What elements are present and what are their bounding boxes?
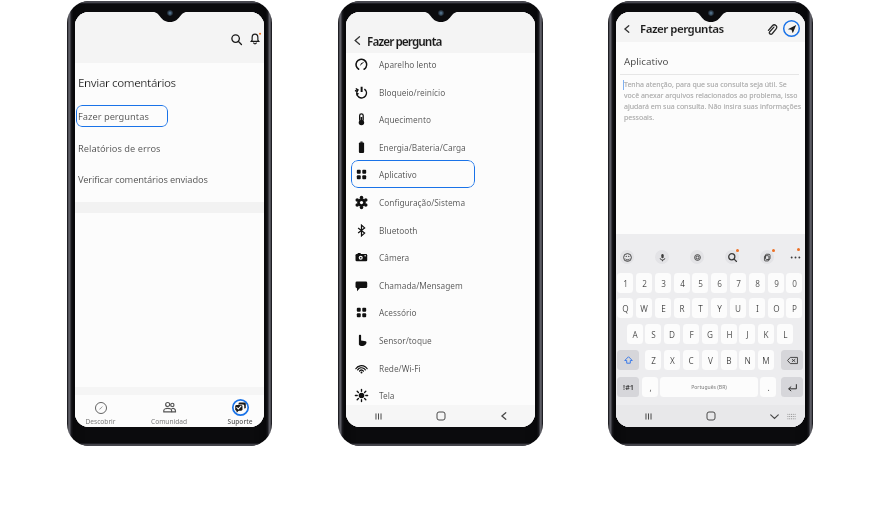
button[interactable]: Notifications: [246, 30, 264, 48]
staticText: E: [661, 303, 666, 314]
button[interactable]: Acessório: [351, 298, 475, 326]
button[interactable]: Descobrir: [85, 396, 116, 427]
button[interactable]: Bluetooth: [351, 216, 475, 244]
button[interactable]: Backspace: [781, 350, 803, 370]
button[interactable]: 2: [636, 273, 652, 293]
button[interactable]: Sensor/toque: [351, 326, 475, 354]
staticText: Tenha atenção, para que sua consulta sej…: [624, 80, 801, 122]
button[interactable]: Stickers: [690, 250, 704, 264]
button[interactable]: Y: [711, 298, 727, 318]
button[interactable]: P: [786, 298, 802, 318]
button[interactable]: Home: [703, 408, 719, 424]
staticText: 9: [774, 278, 779, 289]
staticText: ,: [649, 382, 652, 393]
staticText: 0: [792, 278, 797, 289]
button[interactable]: Português (BR): [660, 377, 758, 397]
button[interactable]: W: [636, 298, 652, 318]
staticText: Enviar comentários: [78, 75, 176, 91]
staticText: Aquecimento: [379, 114, 431, 125]
button[interactable]: R: [674, 298, 690, 318]
button[interactable]: Tela: [351, 381, 475, 409]
button[interactable]: X: [664, 350, 680, 370]
button[interactable]: 9: [768, 273, 784, 293]
button[interactable]: Relatórios de erros: [75, 137, 264, 159]
button[interactable]: 8: [749, 273, 765, 293]
button[interactable]: Hide keyboard: [766, 408, 782, 424]
button[interactable]: Z: [645, 350, 661, 370]
staticText: 1: [623, 278, 628, 289]
button[interactable]: Recent apps: [370, 408, 386, 424]
button[interactable]: Attach file: [763, 21, 779, 37]
staticText: Tela: [379, 390, 395, 401]
staticText: N: [744, 355, 751, 366]
button[interactable]: C: [683, 350, 699, 370]
button[interactable]: ,: [642, 377, 658, 397]
button[interactable]: N: [739, 350, 755, 370]
button[interactable]: Verificar comentários enviados: [75, 168, 264, 190]
button[interactable]: Clipboard: [760, 250, 774, 264]
button[interactable]: 1: [617, 273, 633, 293]
button[interactable]: M: [758, 350, 774, 370]
button[interactable]: L: [777, 324, 793, 344]
button[interactable]: Search: [227, 30, 245, 48]
button[interactable]: Rede/Wi-Fi: [351, 354, 475, 382]
staticText: Aplicativo: [379, 169, 417, 180]
button[interactable]: 4: [674, 273, 690, 293]
button[interactable]: E: [655, 298, 671, 318]
button[interactable]: G: [702, 324, 718, 344]
button[interactable]: Change keyboard: [784, 409, 798, 423]
button[interactable]: Emoji: [620, 250, 634, 264]
button[interactable]: A: [627, 324, 643, 344]
button[interactable]: Aquecimento: [351, 105, 475, 133]
button[interactable]: Q: [617, 298, 633, 318]
button[interactable]: I: [749, 298, 765, 318]
staticText: 8: [755, 278, 760, 289]
button[interactable]: Bloqueio/reinício: [351, 78, 475, 106]
button[interactable]: Back: [496, 408, 512, 424]
staticText: Rede/Wi-Fi: [379, 363, 421, 374]
button[interactable]: Send: [783, 20, 800, 37]
button[interactable]: 5: [692, 273, 708, 293]
button[interactable]: Energia/Bateria/Carga: [351, 133, 475, 161]
button[interactable]: Suporte: [226, 396, 254, 427]
button[interactable]: Voice input: [655, 250, 669, 264]
staticText: Comunidade: [150, 417, 188, 427]
button[interactable]: Search: [725, 250, 739, 264]
button[interactable]: Chamada/Mensagem: [351, 271, 475, 299]
button[interactable]: !#1: [617, 377, 639, 397]
staticText: R: [679, 303, 685, 314]
staticText: V: [708, 355, 713, 366]
button[interactable]: Back: [619, 21, 635, 37]
button[interactable]: J: [739, 324, 755, 344]
button[interactable]: V: [702, 350, 718, 370]
button[interactable]: Enter: [781, 377, 803, 397]
button[interactable]: F: [683, 324, 699, 344]
button[interactable]: Recent apps: [640, 408, 656, 424]
button[interactable]: Shift: [617, 350, 639, 370]
button[interactable]: Fazer perguntas: [76, 105, 168, 127]
button[interactable]: 3: [655, 273, 671, 293]
button[interactable]: 7: [730, 273, 746, 293]
staticText: Câmera: [379, 252, 410, 263]
button[interactable]: B: [721, 350, 737, 370]
button[interactable]: Home: [433, 408, 449, 424]
button[interactable]: Configuração/Sistema: [351, 188, 475, 216]
button[interactable]: Aplicativo: [351, 160, 475, 188]
button[interactable]: D: [664, 324, 680, 344]
button[interactable]: T: [692, 298, 708, 318]
button[interactable]: Câmera: [351, 243, 475, 271]
button[interactable]: H: [721, 324, 737, 344]
button[interactable]: S: [645, 324, 661, 344]
button[interactable]: U: [730, 298, 746, 318]
button[interactable]: Comunidade: [150, 396, 188, 427]
button[interactable]: More options: [788, 250, 802, 264]
staticText: Descobrir: [85, 417, 116, 426]
button[interactable]: K: [758, 324, 774, 344]
staticText: Fazer perguntas: [640, 21, 724, 37]
button[interactable]: .: [760, 377, 776, 397]
button[interactable]: 6: [711, 273, 727, 293]
button[interactable]: Aparelho lento: [351, 50, 475, 78]
button[interactable]: 0: [786, 273, 802, 293]
button[interactable]: Back: [349, 32, 366, 49]
button[interactable]: O: [768, 298, 784, 318]
